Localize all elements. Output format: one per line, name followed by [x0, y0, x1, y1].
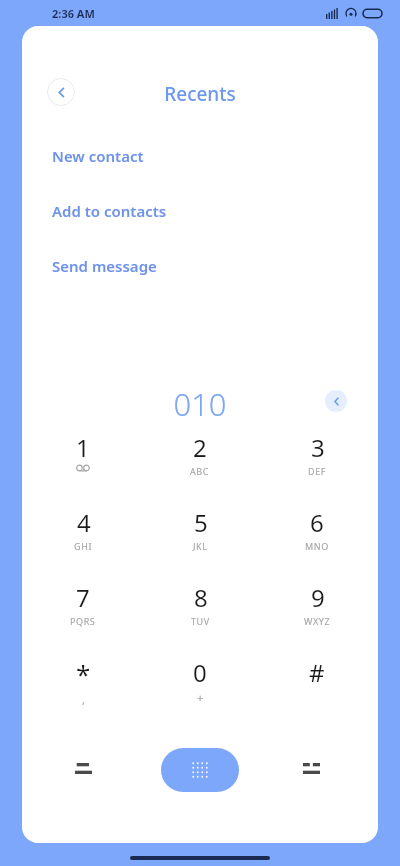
staticText: New contact — [52, 146, 144, 166]
staticText: GHI — [74, 540, 93, 552]
button[interactable]: # — [278, 656, 356, 726]
button[interactable]: * — [44, 656, 122, 726]
button[interactable]: 6 — [278, 506, 356, 576]
staticText: MNO — [305, 540, 329, 552]
staticText: 2:36 AM — [52, 6, 95, 21]
staticText: ABC — [190, 465, 210, 477]
staticText: 9 — [311, 581, 325, 614]
staticText: + — [197, 690, 204, 705]
staticText: Recents — [22, 81, 378, 107]
button[interactable]: 1 — [44, 431, 122, 501]
staticText: 010 — [22, 383, 378, 425]
button[interactable]: 0 — [161, 656, 239, 726]
staticText: 6 — [310, 506, 324, 539]
button[interactable]: Add to contacts — [38, 196, 258, 226]
button[interactable]: New contact — [38, 141, 258, 171]
button[interactable]: Keypad — [161, 748, 239, 792]
staticText: 3 — [311, 431, 325, 464]
staticText: Add to contacts — [52, 201, 167, 221]
button[interactable]: 9 — [278, 581, 356, 651]
button[interactable]: 2 — [161, 431, 239, 501]
staticText: 7 — [76, 581, 90, 614]
staticText: 8 — [194, 581, 208, 614]
staticText: 2 — [193, 431, 207, 464]
staticText: DEF — [308, 465, 327, 477]
staticText: 0 — [193, 656, 207, 689]
button[interactable]: Send message — [38, 251, 258, 281]
button[interactable]: 3 — [278, 431, 356, 501]
staticText: PQRS — [70, 615, 96, 627]
button[interactable]: Backspace — [325, 390, 347, 412]
staticText: TUV — [191, 615, 210, 627]
staticText: JKL — [193, 540, 208, 552]
staticText: 1 — [76, 431, 90, 464]
staticText: # — [309, 656, 325, 689]
staticText: * — [76, 656, 91, 691]
staticText: , — [82, 692, 86, 707]
staticText: 4 — [77, 506, 91, 539]
button[interactable]: Call log — [61, 746, 105, 790]
button[interactable]: 5 — [161, 506, 239, 576]
button[interactable]: 4 — [44, 506, 122, 576]
button[interactable]: Contacts — [289, 746, 333, 790]
button[interactable]: Back — [47, 78, 75, 106]
staticText: WXYZ — [304, 615, 331, 627]
staticText: Send message — [52, 256, 157, 276]
button[interactable]: 8 — [161, 581, 239, 651]
button[interactable]: 7 — [44, 581, 122, 651]
staticText: 5 — [194, 506, 208, 539]
